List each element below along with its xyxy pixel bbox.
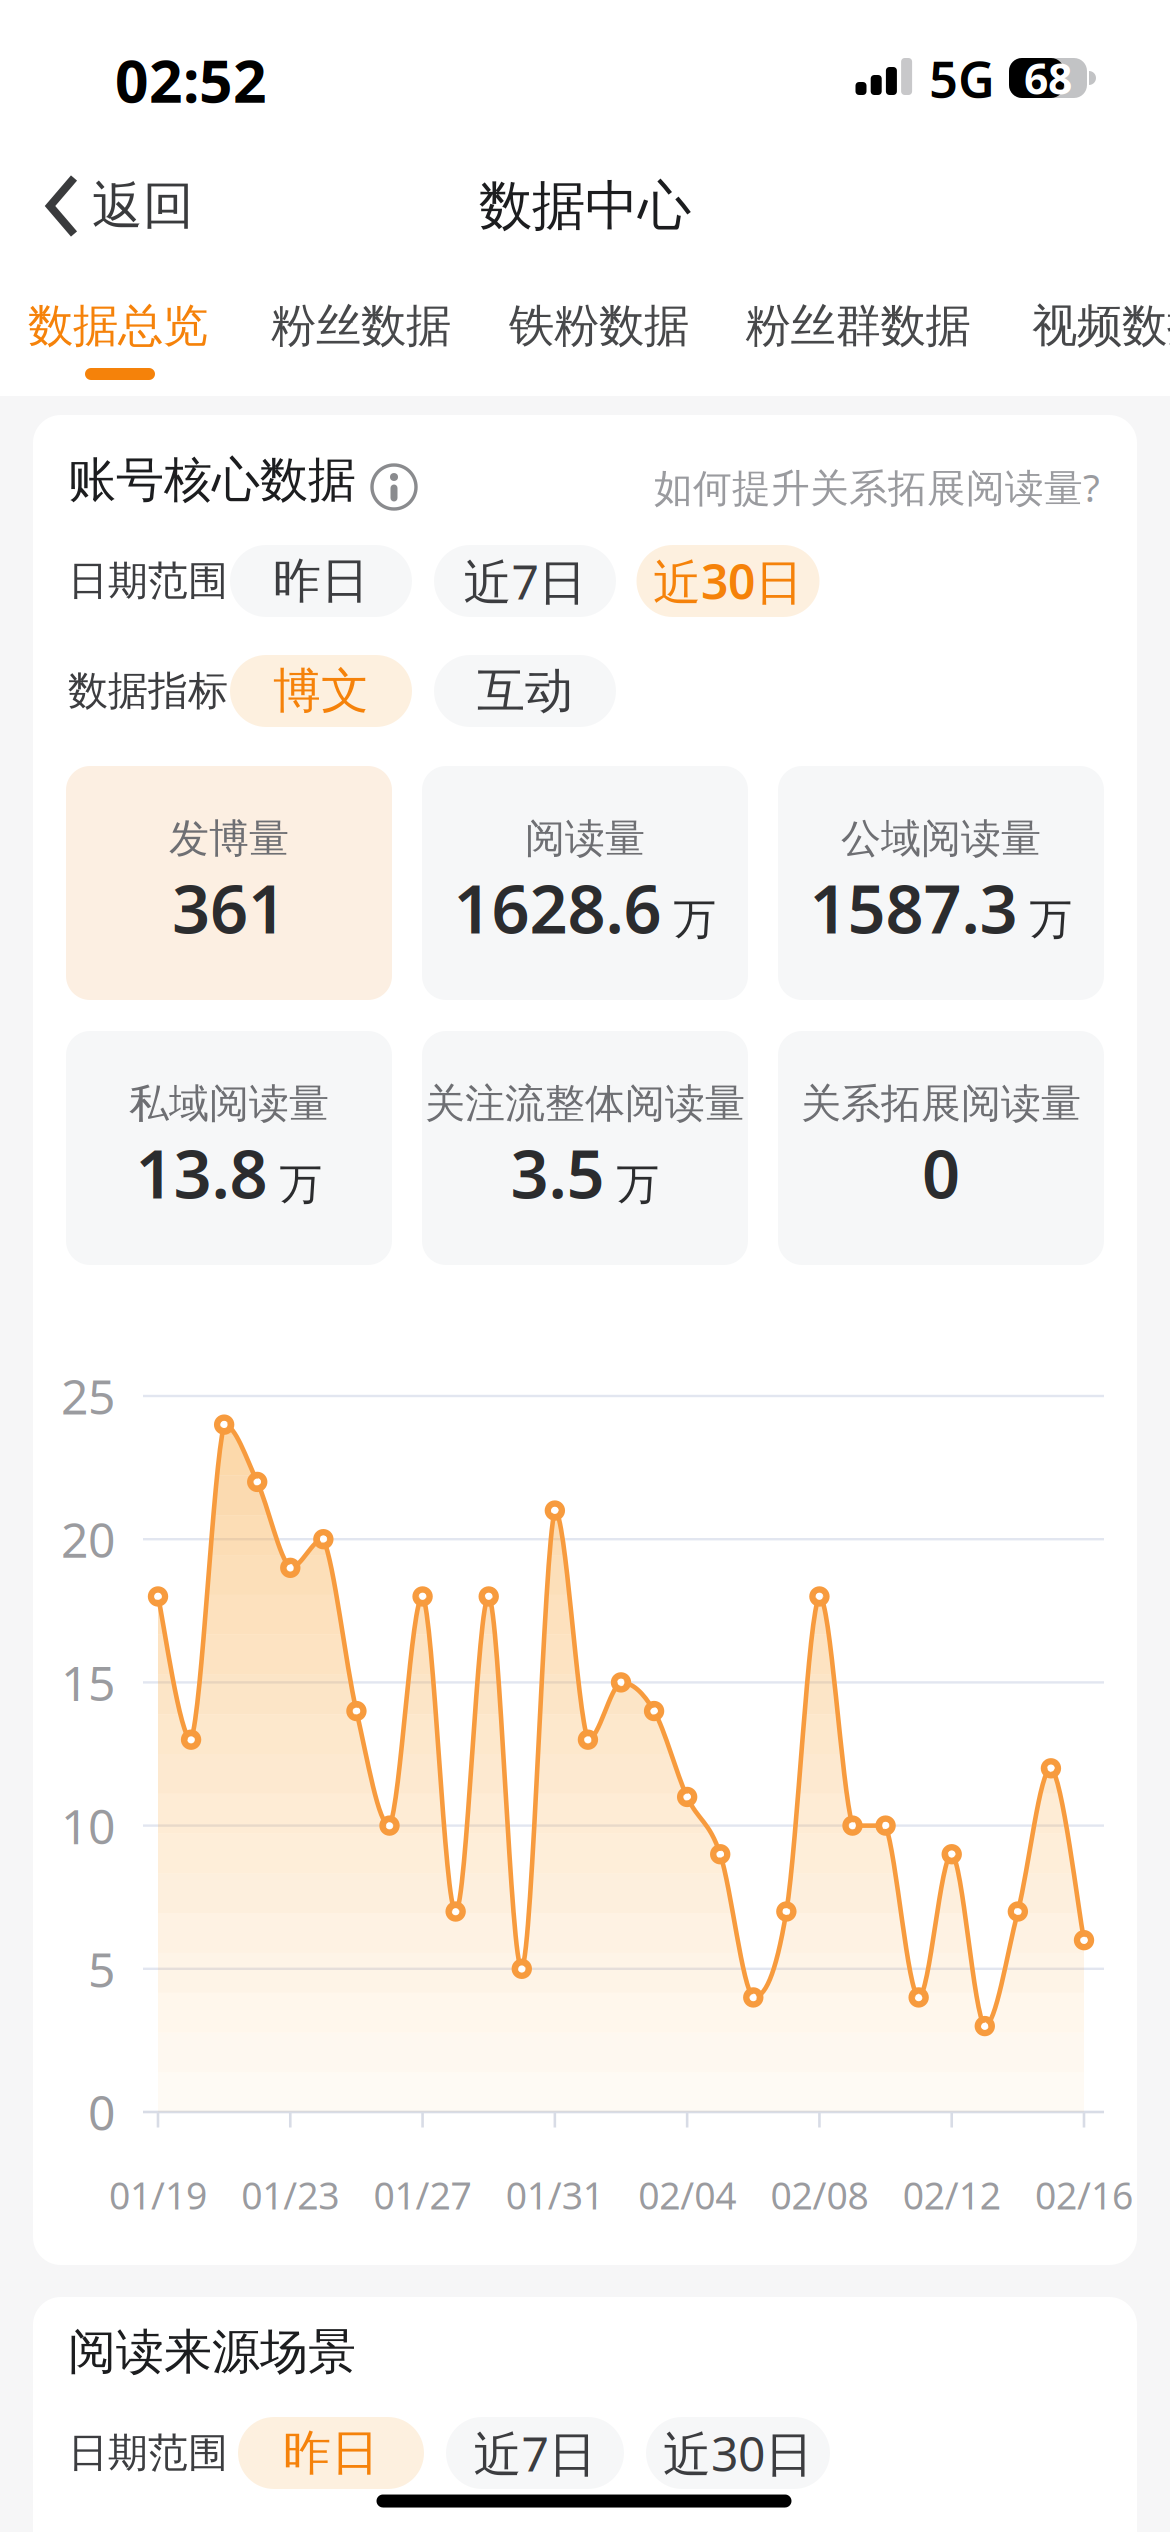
button[interactable]: 粉丝数据 [271,298,451,354]
staticText: 02/16 [1035,2170,1133,2220]
button[interactable]: 发博量 [66,766,392,1000]
staticText: 视频数据 [1032,298,1170,354]
staticText: 关系拓展阅读量 [801,1079,1081,1128]
button[interactable]: 铁粉数据 [509,298,689,354]
button[interactable]: 数据总览 [28,298,208,354]
staticText: 02/12 [903,2170,1001,2220]
staticText: 01/23 [241,2170,339,2220]
staticText: 日期范围 [68,556,228,605]
button[interactable]: 近30日 [636,545,819,617]
staticText: 1628.6 [453,863,661,952]
staticText: 数据指标 [68,666,228,715]
staticText: 私域阅读量 [129,1079,329,1128]
staticText: 10 [61,1794,115,1857]
staticText: 20 [61,1507,115,1571]
button[interactable]: 博文 [230,655,412,727]
button[interactable]: 近7日 [446,2417,624,2489]
button[interactable]: 视频数据 [1032,298,1170,354]
staticText: 粉丝数据 [271,298,451,354]
staticText: 关注流整体阅读量 [425,1079,745,1128]
staticText: 账号核心数据 [68,450,356,509]
staticText: 阅读量 [525,814,645,863]
staticText: 01/19 [109,2170,207,2220]
staticText: 阅读来源场景 [68,2322,356,2381]
button[interactable]: 公域阅读量 [778,766,1104,1000]
button[interactable]: 账号核心数据说明 [370,463,418,511]
staticText: 公域阅读量 [841,814,1041,863]
staticText: 25 [61,1364,115,1428]
staticText: 13.8 [135,1128,267,1217]
staticText: 返回 [92,175,194,237]
staticText: 昨日 [273,551,369,610]
staticText: 近7日 [463,549,586,613]
staticText: 02/04 [638,2170,736,2220]
staticText: 15 [61,1650,115,1714]
staticText: 02:52 [115,41,267,119]
button[interactable]: 近30日 [646,2417,830,2489]
staticText: 近7日 [473,2421,596,2485]
button[interactable]: 私域阅读量 [66,1031,392,1265]
button[interactable]: 关系拓展阅读量 [778,1031,1104,1265]
staticText: 68 [1024,50,1072,106]
button[interactable]: 近7日 [434,545,616,617]
staticText: 近30日 [663,2421,813,2485]
staticText: 发博量 [169,814,289,863]
staticText: 361 [172,863,286,952]
staticText: 1587.3 [809,863,1017,952]
staticText: 数据中心 [479,173,691,239]
button[interactable]: 关注流整体阅读量 [422,1031,748,1265]
staticText: 0 [922,1128,960,1217]
staticText: 粉丝群数据 [745,298,970,354]
button[interactable]: 昨日 [230,545,412,617]
staticText: 如何提升关系拓展阅读量? [654,461,1100,513]
staticText: 数据总览 [28,298,208,354]
staticText: 万 [673,893,716,945]
staticText: 万 [616,1158,659,1210]
staticText: 博文 [273,661,369,720]
button[interactable]: 返回 [46,175,194,237]
staticText: 昨日 [283,2423,379,2482]
staticText: 近30日 [653,549,803,613]
button[interactable]: 互动 [434,655,616,727]
staticText: 万 [279,1158,322,1210]
staticText: 01/31 [506,2170,604,2220]
button[interactable]: 如何提升关系拓展阅读量? [654,461,1100,513]
staticText: 02/08 [770,2170,868,2220]
staticText: 5G [929,44,995,112]
staticText: 0 [88,2080,115,2144]
staticText: 日期范围 [68,2428,228,2477]
staticText: 5 [88,1937,115,2001]
button[interactable]: 粉丝群数据 [745,298,970,354]
staticText: 铁粉数据 [509,298,689,354]
staticText: 01/27 [374,2170,472,2220]
staticText: 3.5 [510,1128,604,1217]
staticText: 万 [1029,893,1072,945]
button[interactable]: 昨日 [238,2417,424,2489]
staticText: 互动 [477,661,573,720]
button[interactable]: 阅读量 [422,766,748,1000]
